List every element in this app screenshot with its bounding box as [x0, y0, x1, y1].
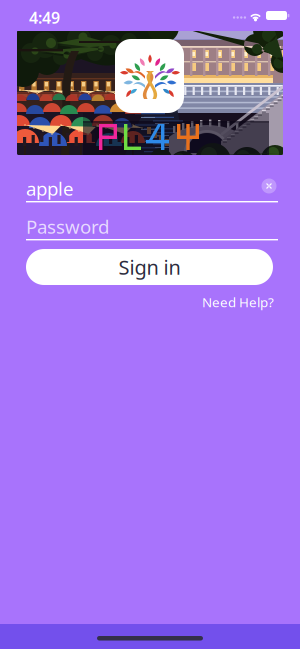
staticText: 4:49 [29, 7, 60, 28]
staticText: apple [26, 176, 74, 201]
button[interactable]: Sign in [26, 249, 273, 285]
button[interactable]: Clear text [256, 173, 282, 199]
staticText: Password [26, 214, 109, 239]
staticText: Sign in [118, 254, 180, 280]
staticText: Need Help? [202, 293, 274, 311]
button[interactable]: Need Help? [196, 295, 274, 309]
